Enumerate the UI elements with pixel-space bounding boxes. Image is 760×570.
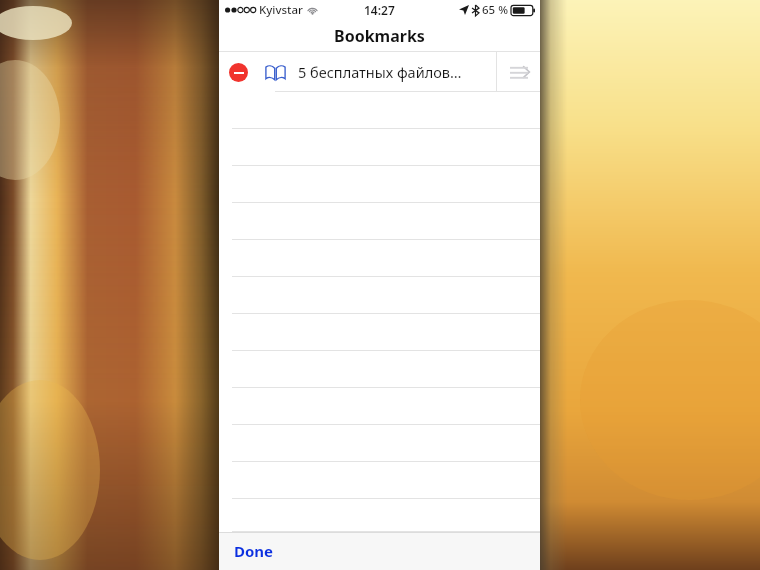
staticText: Kyivstar	[259, 2, 303, 18]
button[interactable]: Done	[234, 532, 274, 570]
button[interactable]	[219, 388, 540, 425]
button[interactable]	[219, 129, 540, 166]
button[interactable]	[219, 314, 540, 351]
button[interactable]	[219, 203, 540, 240]
button[interactable]	[219, 351, 540, 388]
staticText: Bookmarks	[334, 25, 425, 47]
staticText: 65 %	[482, 2, 508, 18]
button[interactable]: Reorder	[497, 52, 540, 92]
button[interactable]	[219, 425, 540, 462]
button[interactable]	[219, 92, 540, 129]
staticText: Done	[234, 541, 274, 561]
button[interactable]	[219, 166, 540, 203]
staticText: 5 бесплатных файлов…	[298, 62, 523, 82]
button[interactable]	[219, 277, 540, 314]
button[interactable]	[219, 499, 540, 532]
button[interactable]: Delete bookmark	[229, 63, 248, 82]
button[interactable]: Delete bookmark	[219, 52, 540, 92]
staticText: 14:27	[364, 2, 395, 18]
button[interactable]	[219, 462, 540, 499]
button[interactable]	[219, 240, 540, 277]
